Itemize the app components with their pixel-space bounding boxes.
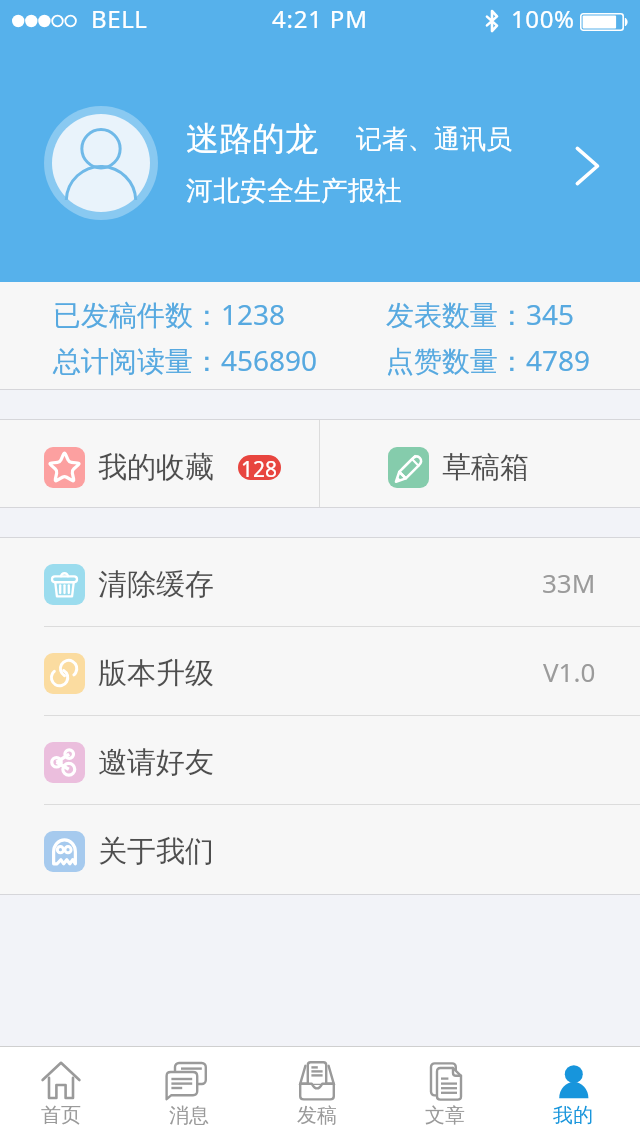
staticText: 版本升级 (98, 655, 214, 692)
button[interactable]: 我的收藏 (0, 420, 319, 507)
staticText: 记者、通讯员 (356, 123, 512, 156)
staticText: 点赞数量：4789 (386, 341, 591, 379)
button[interactable]: 首页 (0, 1047, 128, 1136)
staticText: 清除缓存 (98, 566, 214, 603)
staticText: 33M (542, 565, 596, 600)
button[interactable]: 关于我们 (0, 805, 640, 894)
staticText: 总计阅读量：456890 (53, 341, 318, 379)
other: Profile details (574, 144, 602, 188)
staticText: 我的 (553, 1103, 593, 1128)
button[interactable]: 邀请好友 (0, 716, 640, 805)
staticText: 迷路的龙 (186, 118, 318, 160)
staticText: 已发稿件数：1238 (53, 295, 286, 333)
staticText: BELL (91, 2, 148, 35)
staticText: 邀请好友 (98, 744, 214, 781)
staticText: V1.0 (543, 654, 596, 689)
staticText: 文章 (425, 1103, 465, 1128)
staticText: 草稿箱 (442, 449, 529, 486)
staticText: 消息 (169, 1103, 209, 1128)
button[interactable]: 清除缓存 (0, 538, 640, 627)
staticText: 关于我们 (98, 833, 214, 870)
button[interactable]: 消息 (128, 1047, 256, 1136)
button[interactable]: 我的 (512, 1047, 640, 1136)
button[interactable]: 版本升级 (0, 627, 640, 716)
staticText: 我的收藏 (98, 449, 214, 486)
staticText: 128 (241, 455, 278, 480)
staticText: 发表数量：345 (386, 295, 575, 333)
staticText: 100% (511, 2, 575, 35)
button[interactable]: 文章 (384, 1047, 512, 1136)
staticText: 河北安全生产报社 (186, 174, 402, 208)
staticText: 发稿 (297, 1103, 337, 1128)
staticText: 首页 (41, 1103, 81, 1128)
button[interactable]: 迷路的龙 (0, 44, 640, 282)
button[interactable]: 发稿 (256, 1047, 384, 1136)
staticText: 4:21 PM (272, 2, 368, 35)
button[interactable]: 草稿箱 (320, 420, 640, 507)
